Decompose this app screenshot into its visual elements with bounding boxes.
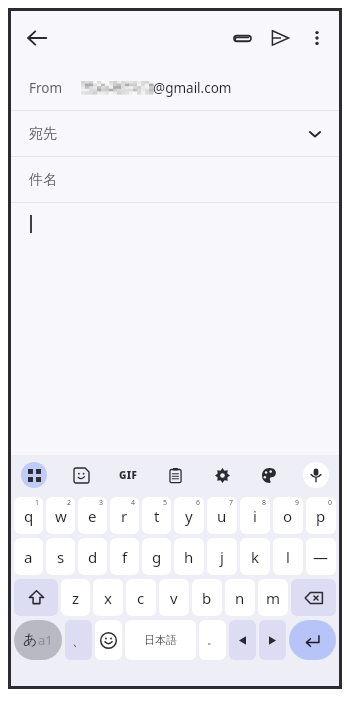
button[interactable]: e xyxy=(78,497,107,534)
staticText: a xyxy=(24,547,33,567)
staticText: u xyxy=(217,506,227,526)
button[interactable]: p xyxy=(306,497,336,534)
staticText: From xyxy=(29,79,63,97)
staticText: 0 xyxy=(328,498,333,508)
button[interactable]: c xyxy=(126,579,156,616)
button[interactable]: Enter xyxy=(289,620,336,660)
staticText: 件名 xyxy=(29,171,57,189)
button[interactable]: Backspace xyxy=(291,579,336,616)
button[interactable]: k xyxy=(240,538,270,575)
staticText: y xyxy=(185,506,193,526)
button[interactable]: s xyxy=(46,538,75,575)
button[interactable]: u xyxy=(207,497,237,534)
staticText: 宛先 xyxy=(29,125,57,143)
staticText: 9 xyxy=(295,498,300,508)
staticText: 日本語 xyxy=(144,633,177,647)
staticText: l xyxy=(286,547,290,567)
button[interactable]: z xyxy=(61,579,90,616)
staticText: あ xyxy=(23,631,38,649)
staticText: g xyxy=(152,547,162,567)
staticText: 4 xyxy=(131,498,136,508)
button[interactable]: 。 xyxy=(199,620,226,660)
button[interactable]: o xyxy=(273,497,303,534)
staticText: 、 xyxy=(72,632,85,648)
staticText: e xyxy=(88,506,97,526)
staticText: x xyxy=(104,588,112,608)
button[interactable]: More options xyxy=(299,20,335,56)
staticText: 8 xyxy=(262,498,267,508)
button[interactable]: — xyxy=(306,538,336,575)
staticText: o xyxy=(283,506,293,526)
button[interactable]: Emoji xyxy=(95,620,122,660)
staticText: t xyxy=(154,506,160,526)
button[interactable]: d xyxy=(78,538,107,575)
staticText: k xyxy=(251,547,260,567)
button[interactable]: 、 xyxy=(65,620,92,660)
button[interactable]: x xyxy=(93,579,123,616)
staticText: d xyxy=(88,547,98,567)
button[interactable]: 件名 xyxy=(11,157,339,202)
staticText: z xyxy=(72,588,80,608)
staticText: f xyxy=(122,547,128,567)
staticText: 。 xyxy=(207,633,218,647)
button[interactable]: w xyxy=(46,497,75,534)
button[interactable]: t xyxy=(142,497,171,534)
button[interactable]: Voice input xyxy=(303,462,329,488)
button[interactable]: Attach file xyxy=(223,19,261,57)
button[interactable]: f xyxy=(110,538,139,575)
staticText: h xyxy=(184,547,194,567)
button[interactable]: Themes xyxy=(256,462,282,488)
button[interactable]: Cursor right xyxy=(259,620,286,660)
button[interactable]: Keyboard apps xyxy=(21,462,47,488)
staticText: 2 xyxy=(67,498,72,508)
button[interactable] xyxy=(11,203,339,455)
button[interactable]: m xyxy=(258,579,288,616)
button[interactable]: r xyxy=(110,497,139,534)
staticText: r xyxy=(121,506,128,526)
staticText: — xyxy=(313,547,329,567)
staticText: c xyxy=(137,588,145,608)
staticText: @gmail.com xyxy=(153,79,232,97)
button[interactable]: a xyxy=(14,538,43,575)
button[interactable]: Back xyxy=(17,18,57,58)
staticText: v xyxy=(170,588,178,608)
button[interactable]: i xyxy=(240,497,270,534)
button[interactable]: b xyxy=(192,579,222,616)
staticText: 1 xyxy=(35,498,40,508)
button[interactable]: Space xyxy=(125,620,196,660)
staticText: a1 xyxy=(38,631,53,649)
button[interactable]: Shift xyxy=(14,579,58,616)
button[interactable]: h xyxy=(174,538,204,575)
staticText: q xyxy=(24,506,34,526)
button[interactable]: GIF xyxy=(115,462,141,488)
staticText: 6 xyxy=(196,498,201,508)
button[interactable]: l xyxy=(273,538,303,575)
button[interactable]: n xyxy=(225,579,255,616)
staticText: i xyxy=(253,506,257,526)
button[interactable]: From xyxy=(11,65,339,110)
button[interactable]: 宛先 xyxy=(11,111,339,156)
button[interactable]: Settings xyxy=(209,462,235,488)
button[interactable]: Stickers xyxy=(68,462,94,488)
staticText: b xyxy=(202,588,212,608)
staticText: 3 xyxy=(99,498,104,508)
button[interactable]: v xyxy=(159,579,189,616)
button[interactable]: j xyxy=(207,538,237,575)
staticText: 5 xyxy=(163,498,168,508)
staticText: 7 xyxy=(229,498,234,508)
staticText: j xyxy=(220,547,224,567)
staticText: w xyxy=(55,506,67,526)
button[interactable]: g xyxy=(142,538,171,575)
button[interactable]: Send xyxy=(261,19,299,57)
staticText: p xyxy=(316,506,326,526)
staticText: GIF xyxy=(119,468,138,482)
staticText: m xyxy=(266,588,281,608)
staticText: s xyxy=(57,547,65,567)
button[interactable]: Switch language xyxy=(14,620,62,660)
button[interactable]: q xyxy=(14,497,43,534)
button[interactable]: Clipboard xyxy=(162,462,188,488)
staticText: n xyxy=(235,588,245,608)
button[interactable]: y xyxy=(174,497,204,534)
button[interactable]: Cursor left xyxy=(229,620,256,660)
